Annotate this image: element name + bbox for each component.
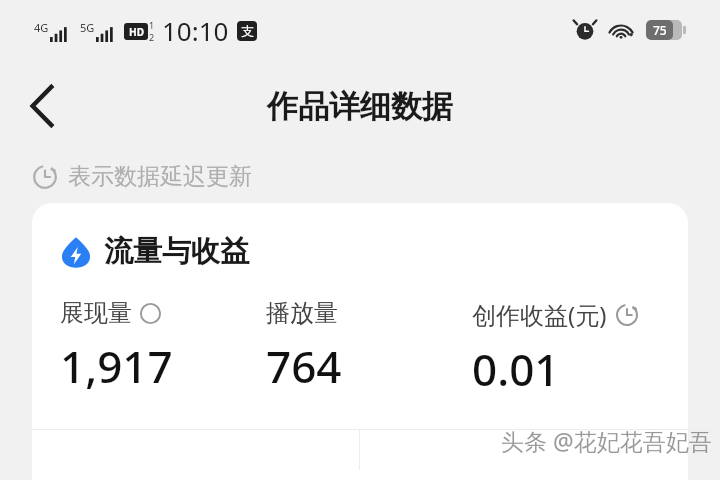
staticText: 作品详细数据 bbox=[267, 87, 453, 126]
staticText: 10:10 bbox=[162, 13, 229, 48]
staticText: 764 bbox=[266, 336, 342, 396]
staticText: 创作收益(元) bbox=[472, 298, 607, 331]
staticText: 0.01 bbox=[472, 339, 560, 399]
staticText: 1,917 bbox=[60, 336, 173, 396]
staticText: 5G bbox=[80, 20, 95, 35]
button[interactable]: 创作收益(元) bbox=[472, 298, 678, 399]
staticText: 表示数据延迟更新 bbox=[68, 162, 252, 191]
button[interactable]: 展现量 bbox=[60, 298, 266, 396]
button[interactable]: Back bbox=[14, 77, 72, 135]
staticText: 头条 @花妃花吾妃吾 bbox=[501, 425, 712, 456]
button[interactable]: 播放量 bbox=[266, 298, 472, 396]
staticText: 流量与收益 bbox=[104, 233, 249, 270]
staticText: HD bbox=[129, 25, 144, 39]
staticText: 播放量 bbox=[266, 298, 338, 328]
staticText: 展现量 bbox=[60, 298, 132, 328]
staticText: 2 bbox=[149, 31, 155, 43]
staticText: 75 bbox=[653, 22, 667, 38]
staticText: 4G bbox=[34, 20, 49, 35]
staticText: 支 bbox=[241, 23, 254, 39]
staticText: 1 bbox=[149, 19, 155, 31]
